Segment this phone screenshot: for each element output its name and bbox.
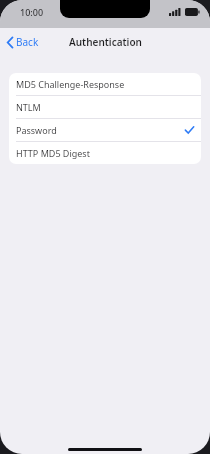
staticText: MD5 Challenge-Response — [16, 78, 194, 90]
staticText: 10:00 — [20, 6, 44, 18]
button[interactable]: NTLM — [9, 96, 201, 118]
button[interactable]: Back — [0, 31, 47, 53]
staticText: Back — [16, 35, 39, 49]
button[interactable]: HTTP MD5 Digest — [9, 142, 201, 164]
button[interactable]: Password — [9, 119, 201, 141]
staticText: HTTP MD5 Digest — [16, 147, 194, 159]
staticText: Password — [16, 124, 185, 136]
staticText: NTLM — [16, 101, 194, 113]
other: Selected — [185, 126, 194, 134]
button[interactable]: MD5 Challenge-Response — [9, 73, 201, 95]
staticText: Authentication — [69, 35, 142, 49]
